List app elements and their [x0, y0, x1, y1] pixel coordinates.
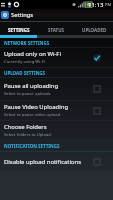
button[interactable]: Pause Video Uploading: [0, 101, 113, 121]
staticText: Select folders to Upload: [4, 132, 51, 138]
button[interactable]: Disable upload notifications: [0, 152, 113, 172]
other: Toggle: [93, 85, 101, 93]
other: Toggle: [93, 158, 101, 166]
staticText: NETWORK SETTINGS: [4, 40, 50, 46]
button[interactable]: STATUS: [37, 22, 75, 38]
other: Toggle: [93, 107, 101, 115]
button[interactable]: Pause all uploading: [0, 78, 113, 101]
staticText: Disable upload notifications: [4, 158, 81, 166]
staticText: STATUS: [48, 27, 65, 33]
staticText: PM: [105, 2, 112, 7]
staticText: NOTIFICATION SETTINGS: [4, 143, 60, 149]
staticText: Settings: [11, 11, 34, 19]
staticText: Choose Folders: [4, 123, 47, 131]
button[interactable]: Upload only on Wi-Fi: [0, 48, 113, 68]
button[interactable]: Choose Folders: [0, 121, 113, 141]
staticText: UPLOADED: [82, 27, 107, 33]
staticText: Pause all uploading: [4, 82, 59, 90]
button[interactable]: UPLOADED: [75, 22, 113, 38]
staticText: SETTINGS: [8, 27, 30, 33]
staticText: Upload only on Wi-Fi: [4, 50, 61, 58]
staticText: Pause Video Uploading: [4, 103, 69, 111]
staticText: Select to pause video upload: [4, 112, 61, 118]
button[interactable]: SETTINGS: [0, 22, 37, 38]
staticText: 11:13: [88, 1, 104, 9]
staticText: Currently using Wi-Fi: [4, 59, 45, 65]
staticText: UPLOAD SETTINGS: [4, 70, 46, 76]
other: Toggle: [93, 54, 101, 62]
staticText: Select to pause uploads: [4, 91, 51, 97]
